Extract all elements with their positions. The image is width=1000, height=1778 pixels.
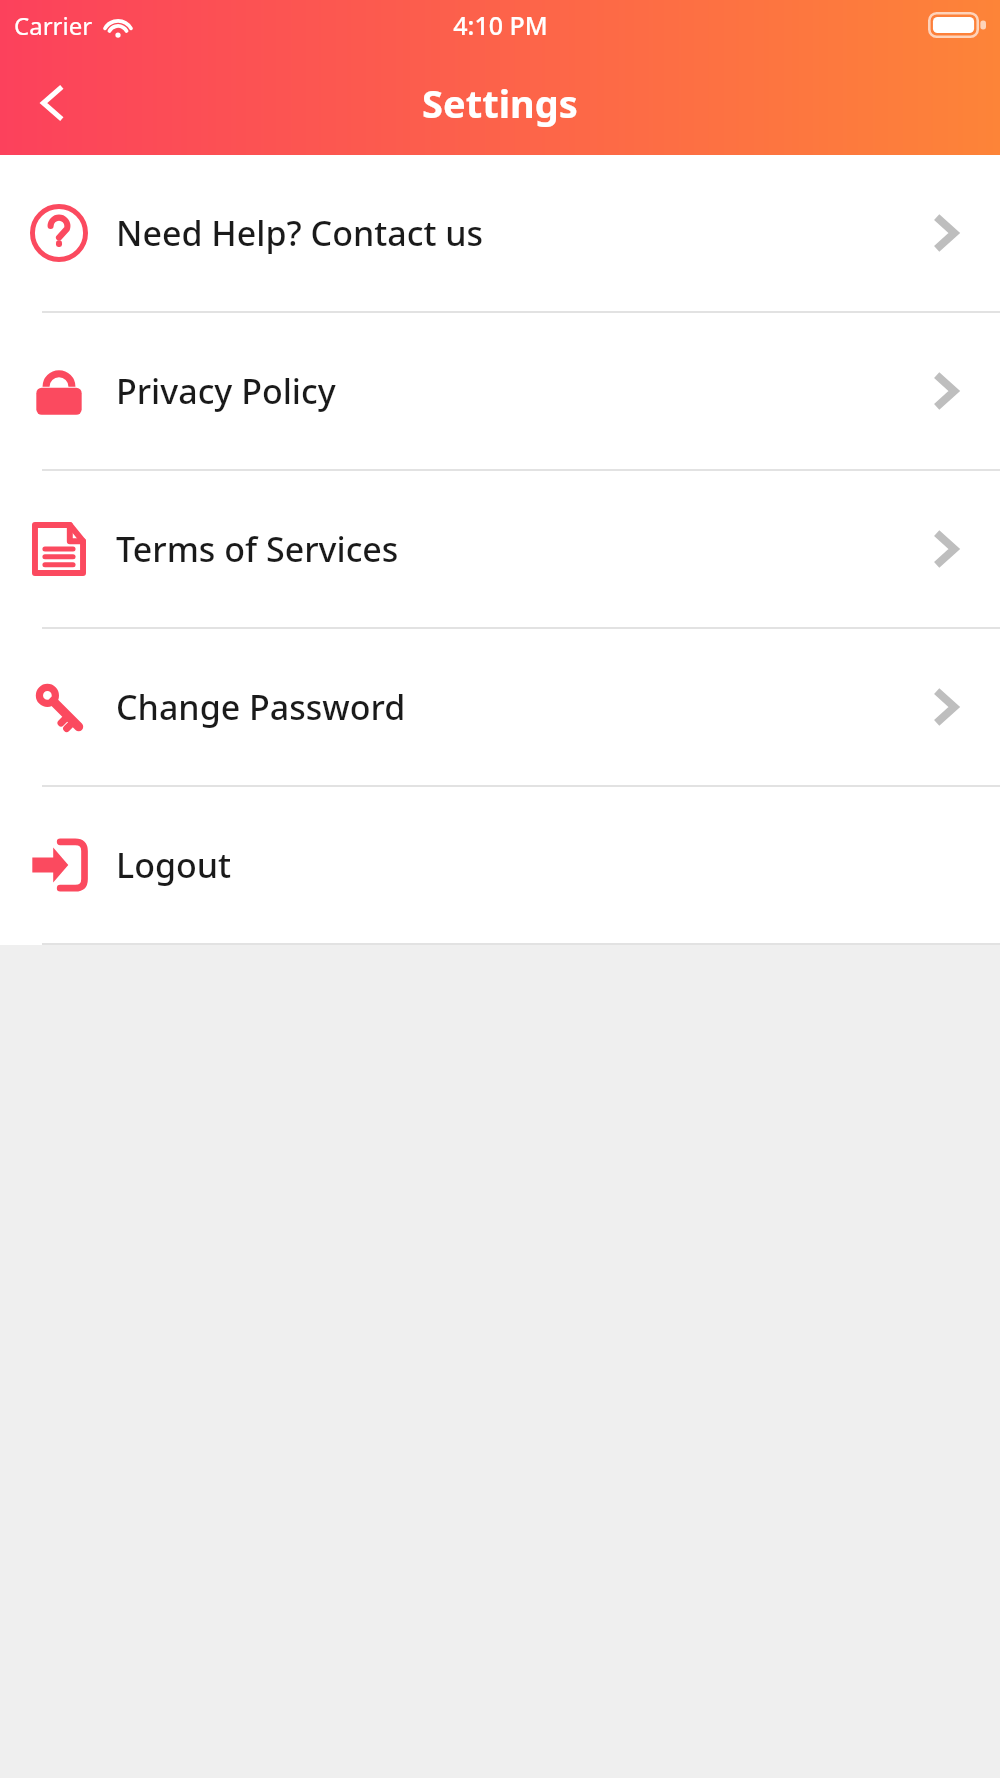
staticText: Settings [422,77,578,129]
button[interactable]: Change Password [0,629,1000,785]
button[interactable]: Terms of Services [0,471,1000,627]
staticText: Privacy Policy [116,368,932,414]
staticText: Change Password [116,684,932,730]
staticText: Logout [116,842,958,888]
button[interactable]: Need Help? Contact us [0,155,1000,311]
staticText: Carrier [14,9,93,42]
button[interactable]: Privacy Policy [0,313,1000,469]
staticText: 4:10 PM [453,8,548,42]
staticText: Terms of Services [116,526,932,572]
button[interactable]: Logout [0,787,1000,943]
staticText: Need Help? Contact us [116,210,932,256]
button[interactable]: Back [20,71,84,135]
